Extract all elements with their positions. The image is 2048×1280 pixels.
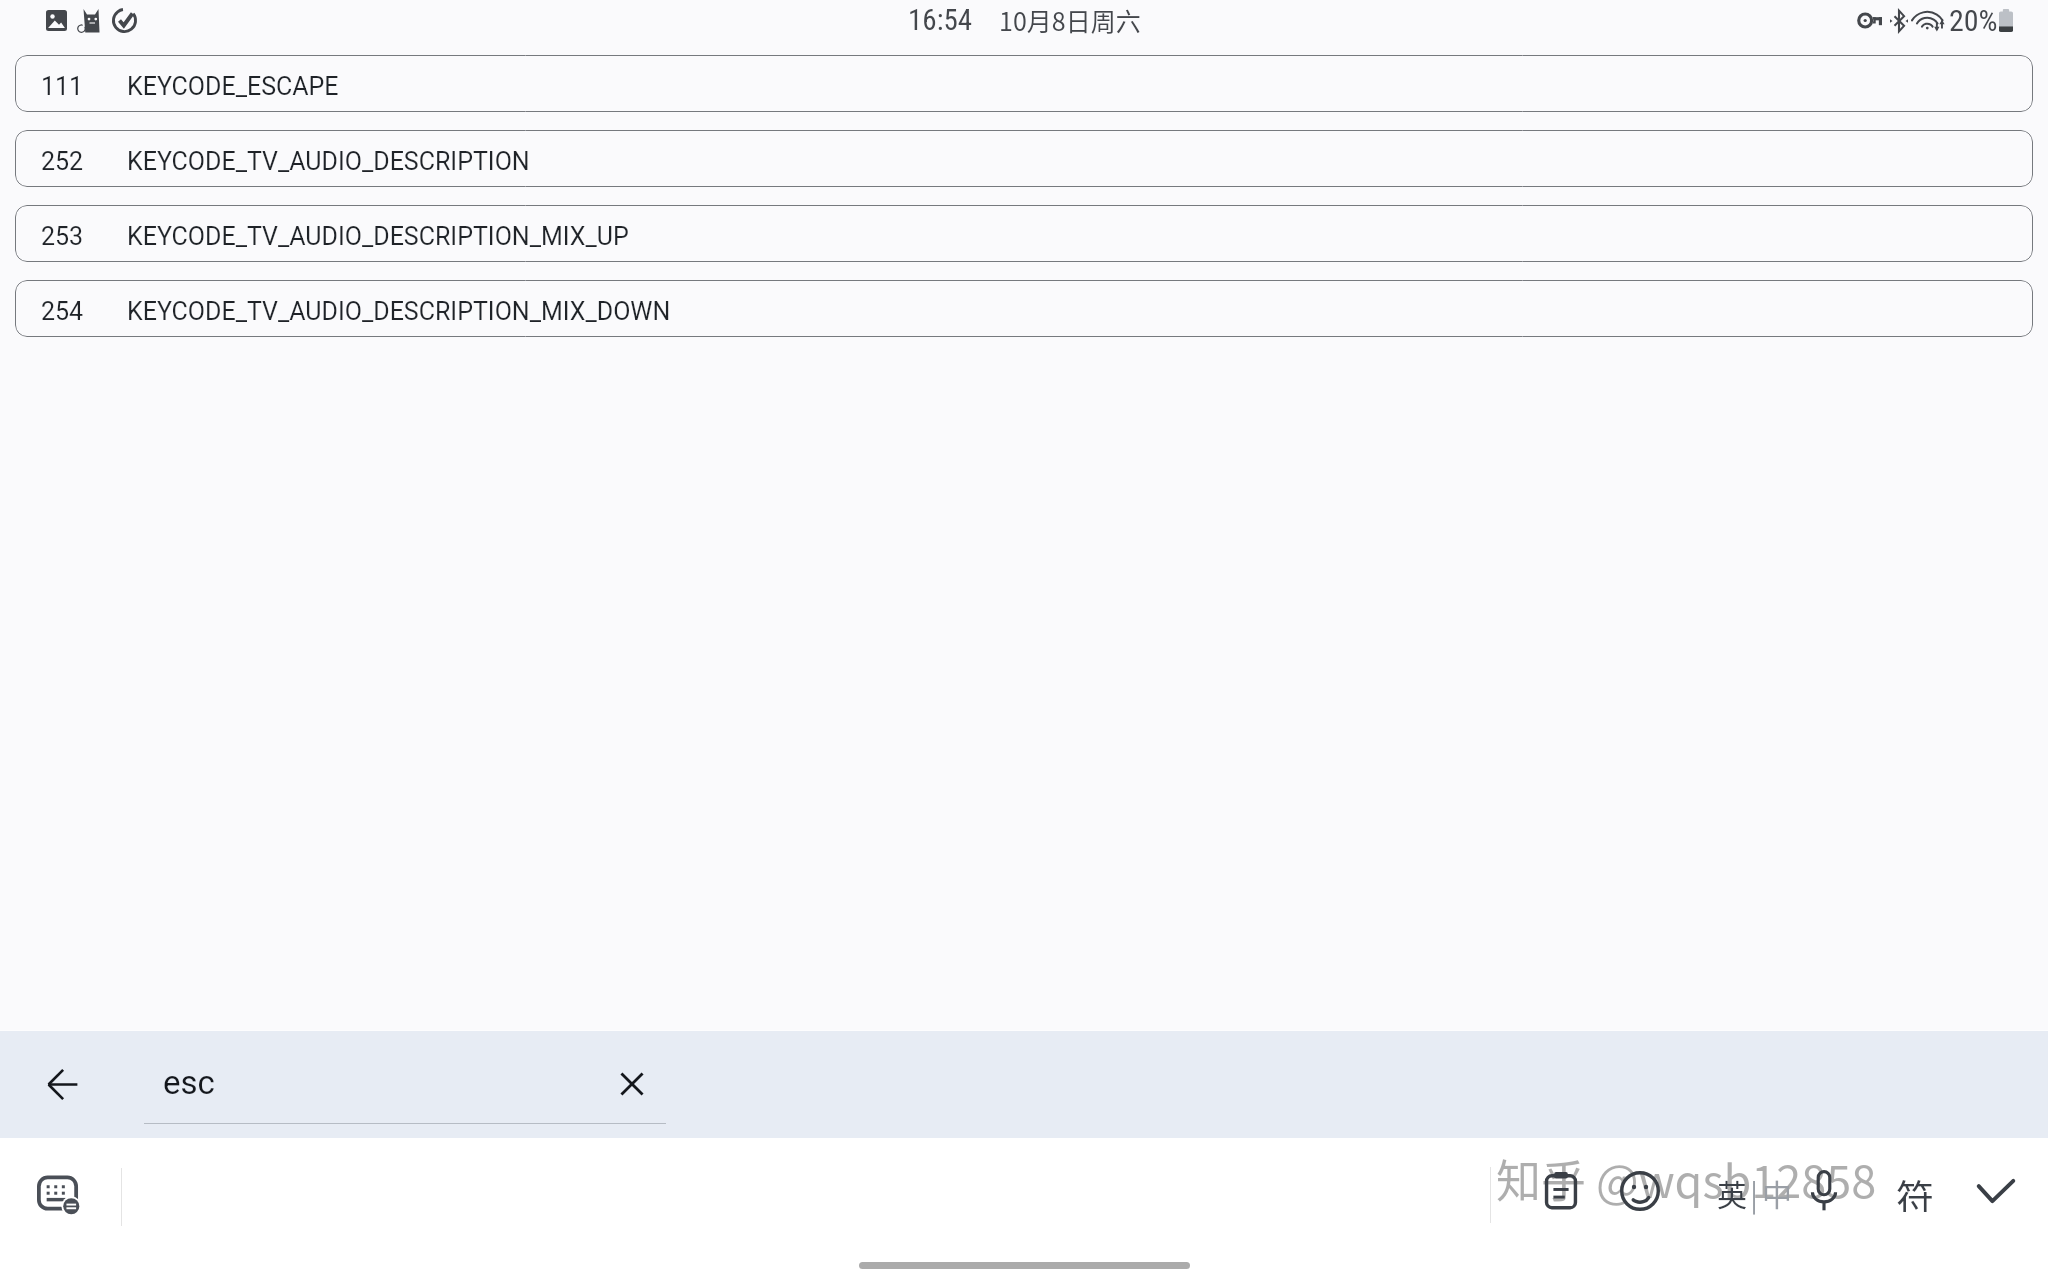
staticText: KEYCODE_ESCAPE xyxy=(127,72,339,101)
staticText: 111 xyxy=(41,72,84,101)
staticText: 16:54 xyxy=(908,3,973,37)
staticText: 252 xyxy=(41,147,84,176)
button[interactable]: Symbols xyxy=(1893,1168,1937,1212)
button[interactable]: Switch input method xyxy=(32,1166,88,1222)
staticText: 英 xyxy=(1717,1171,1747,1214)
staticText: 10月8日周六 xyxy=(999,2,1141,38)
staticText: KEYCODE_TV_AUDIO_DESCRIPTION_MIX_UP xyxy=(127,222,629,251)
staticText: esc xyxy=(163,1063,215,1102)
staticText: KEYCODE_TV_AUDIO_DESCRIPTION xyxy=(127,147,530,176)
staticText: 中 xyxy=(1762,1171,1792,1214)
button[interactable]: Back xyxy=(36,1058,88,1110)
staticText: KEYCODE_TV_AUDIO_DESCRIPTION_MIX_DOWN xyxy=(127,297,671,326)
button[interactable]: Emoji xyxy=(1616,1167,1664,1215)
button[interactable]: 英 xyxy=(1717,1171,1792,1214)
button[interactable]: 252 xyxy=(15,130,2033,187)
staticText: 20% xyxy=(1949,3,1998,38)
button[interactable]: Confirm xyxy=(1972,1167,2020,1215)
button[interactable]: 253 xyxy=(15,205,2033,262)
button[interactable]: Clipboard xyxy=(1537,1167,1585,1215)
button[interactable]: 254 xyxy=(15,280,2033,337)
button[interactable]: Clear search xyxy=(606,1058,658,1110)
staticText: 符 xyxy=(1896,1168,1935,1212)
button[interactable]: Voice input xyxy=(1800,1167,1848,1215)
staticText: 知乎 @wqsb12858 xyxy=(1496,1146,1877,1211)
staticText: | xyxy=(1750,1171,1759,1214)
staticText: 253 xyxy=(41,222,84,251)
staticText: 254 xyxy=(41,297,84,326)
button[interactable]: 111 xyxy=(15,55,2033,112)
